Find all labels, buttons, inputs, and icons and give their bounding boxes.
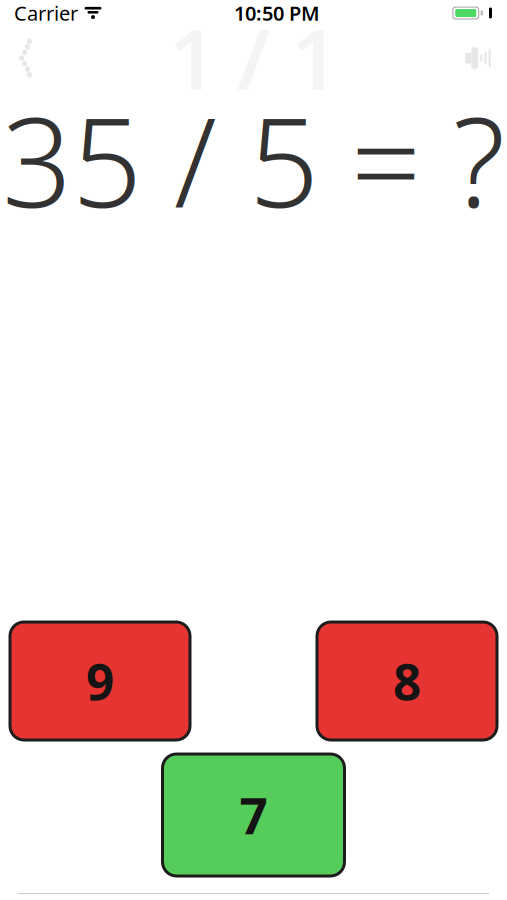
staticText: Carrier <box>14 0 78 26</box>
staticText: 8 <box>393 648 421 714</box>
staticText: 35 / 5 = ? <box>2 79 505 241</box>
button[interactable]: 9 <box>10 622 190 740</box>
button[interactable]: Toggle sound <box>449 26 507 90</box>
button[interactable]: Back <box>0 26 58 90</box>
button[interactable]: 8 <box>317 622 497 740</box>
staticText: 1 / 1 <box>169 3 338 113</box>
staticText: 9 <box>86 648 114 714</box>
staticText: 10:50 PM <box>234 0 320 26</box>
button[interactable]: 7 <box>162 754 344 876</box>
staticText: 7 <box>239 782 267 848</box>
